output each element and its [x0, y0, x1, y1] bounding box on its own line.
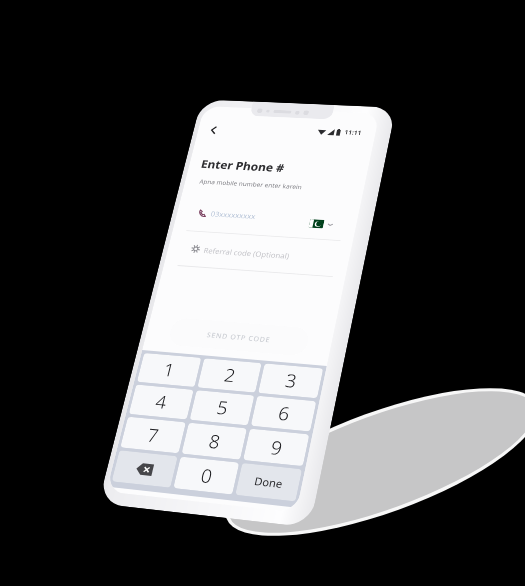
staticText: 11:11	[344, 128, 362, 137]
button[interactable]: 6	[251, 396, 316, 431]
staticText: Done	[253, 473, 284, 491]
staticText: 3	[283, 368, 299, 393]
staticText: 9	[268, 435, 285, 461]
staticText: 7	[145, 423, 161, 448]
staticText: Apna mobile number enter karein	[198, 178, 303, 192]
button[interactable]: Done	[235, 463, 302, 501]
button[interactable]: Back	[201, 120, 225, 139]
button[interactable]: 0	[173, 456, 239, 495]
staticText: 4	[153, 389, 169, 414]
button[interactable]: 1	[137, 353, 201, 387]
button[interactable]: 8	[181, 423, 247, 460]
button[interactable]: Delete	[112, 450, 178, 488]
staticText: 03xxxxxxxxx	[210, 209, 257, 221]
staticText: 1	[161, 358, 177, 382]
staticText: 8	[206, 429, 223, 454]
staticText: Enter Phone #	[199, 156, 286, 175]
button[interactable]: SEND OTP CODE	[167, 317, 311, 357]
staticText: SEND OTP CODE	[206, 330, 272, 344]
staticText: 6	[276, 401, 292, 426]
staticText: 5	[214, 395, 231, 420]
button[interactable]: 2	[197, 358, 262, 393]
button[interactable]: 4	[129, 384, 194, 419]
button[interactable]: 7	[120, 417, 186, 453]
staticText: 0	[198, 463, 215, 489]
staticText: 2	[222, 363, 238, 388]
button[interactable]: 9	[243, 429, 309, 466]
staticText: Referral code (Optional)	[203, 245, 291, 260]
button[interactable]: 3	[258, 363, 323, 398]
button[interactable]: 5	[189, 390, 254, 425]
